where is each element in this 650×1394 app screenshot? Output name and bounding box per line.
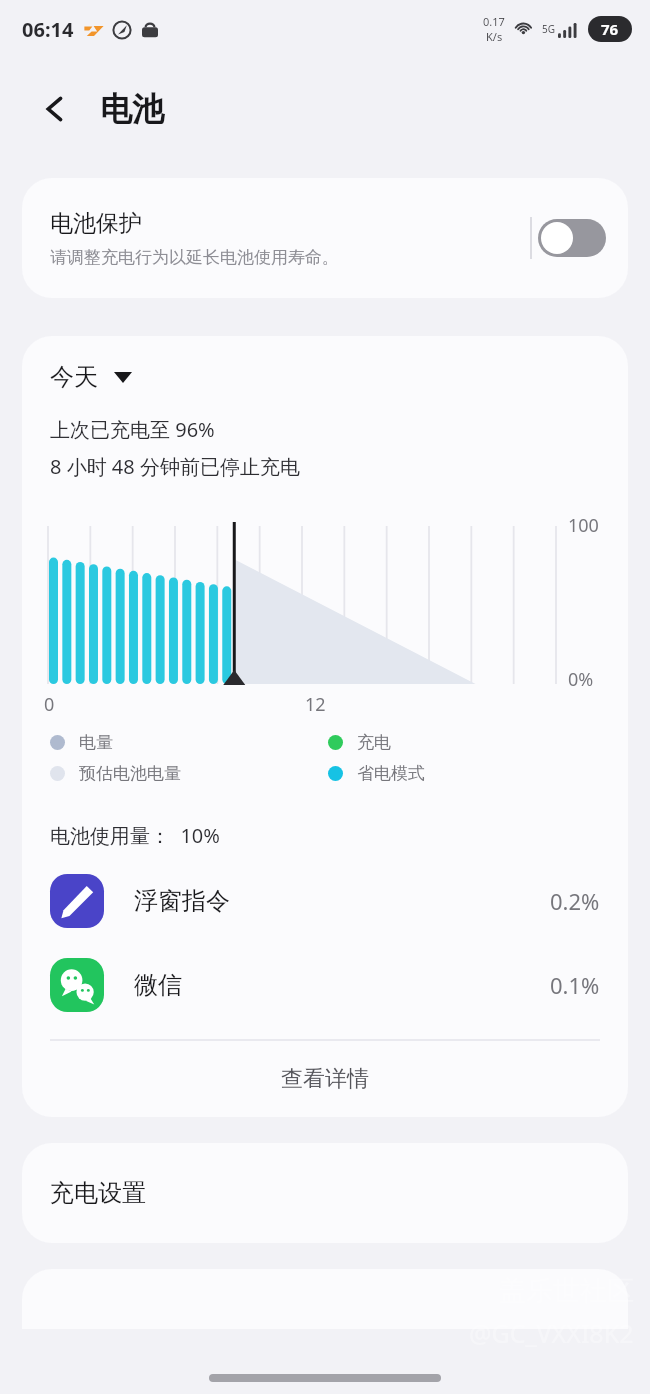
staticText: 请调整充电行为以延长电池使用寿命。 [50, 247, 339, 268]
staticText: 电量 [79, 732, 113, 753]
staticText: 5G [542, 22, 555, 36]
staticText: 8 小时 48 分钟前已停止充电 [50, 453, 300, 480]
button[interactable]: 查看详情 [22, 1041, 628, 1117]
staticText: 充电 [357, 732, 391, 753]
button[interactable]: 电池保护开关 [538, 219, 606, 257]
staticText: 浮窗指令 [134, 886, 230, 916]
staticText: 充电设置 [50, 1178, 146, 1208]
staticText: 查看详情 [281, 1065, 369, 1093]
button[interactable]: 今天 [50, 362, 132, 392]
staticText: 12 [305, 692, 326, 717]
staticText: 电池保护 [50, 209, 142, 238]
staticText: 0.2% [550, 886, 600, 916]
button[interactable]: 充电设置 [22, 1143, 628, 1243]
staticText: 0% [568, 667, 594, 692]
staticText: @GC_VXXI8K2 [469, 1316, 634, 1350]
staticText: 100 [568, 513, 599, 538]
staticText: 0 [44, 692, 55, 717]
button[interactable]: 浮窗指令 [22, 869, 628, 933]
staticText: 省电模式 [357, 763, 425, 784]
staticText: 0.1% [550, 970, 600, 1000]
staticText: 上次已充电至 96% [50, 416, 215, 443]
staticText: 06:14 [22, 16, 74, 43]
staticText: K/s [486, 29, 503, 44]
staticText: 微信 [134, 970, 182, 1000]
staticText: 76 [601, 19, 619, 39]
button[interactable]: 微信 [22, 953, 628, 1017]
staticText: 预估电池电量 [79, 763, 181, 784]
staticText: 电池 [100, 89, 164, 129]
staticText: 0.17 [483, 14, 505, 29]
button[interactable]: 电池保护 [22, 178, 628, 298]
staticText: 电池使用量： 10% [50, 822, 220, 849]
button[interactable]: 返回 [32, 86, 78, 132]
staticText: 今天 [50, 362, 98, 392]
